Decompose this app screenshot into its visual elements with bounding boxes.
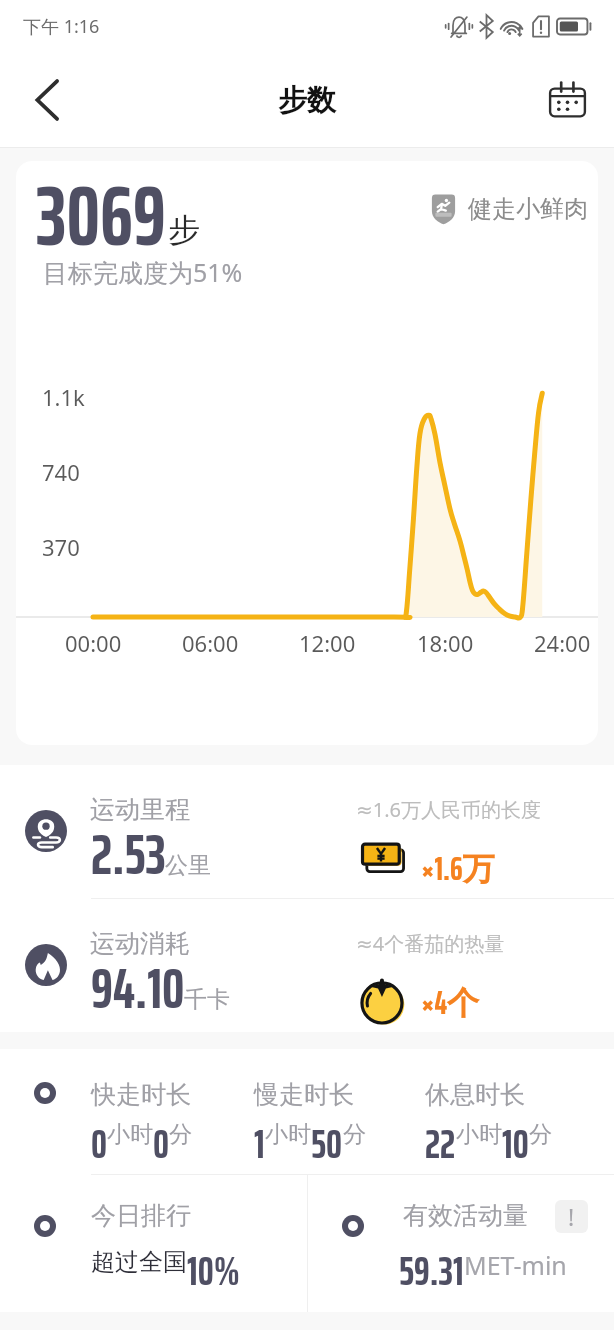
- staticText: 公里: [165, 851, 211, 880]
- staticText: 59.31: [399, 1240, 464, 1303]
- staticText: 22: [425, 1113, 456, 1176]
- staticText: 50: [311, 1113, 343, 1176]
- staticText: 有效活动量: [403, 1200, 528, 1231]
- staticText: 370: [42, 532, 80, 562]
- button[interactable]: Back: [0, 53, 94, 147]
- button[interactable]: 健走小鲜肉: [429, 193, 588, 225]
- staticText: 步: [168, 210, 200, 250]
- staticText: 运动里程: [90, 794, 190, 825]
- staticText: 慢走时长: [254, 1079, 354, 1110]
- staticText: 分: [529, 1120, 552, 1149]
- staticText: 0: [153, 1113, 169, 1176]
- staticText: MET-min: [464, 1248, 567, 1282]
- button[interactable]: 运动消耗: [0, 899, 614, 1032]
- staticText: 下午 1:16: [23, 14, 100, 39]
- staticText: 小时: [456, 1120, 502, 1149]
- staticText: 休息时长: [425, 1079, 525, 1110]
- staticText: 10: [502, 1113, 529, 1176]
- button[interactable]: 运动里程: [0, 765, 614, 898]
- staticText: 健走小鲜肉: [468, 194, 588, 224]
- staticText: 740: [42, 457, 80, 487]
- staticText: ×1.6万: [421, 844, 495, 894]
- staticText: 1.1k: [42, 382, 85, 412]
- button[interactable]: Calendar: [530, 63, 604, 137]
- staticText: 千卡: [184, 985, 230, 1014]
- staticText: 94.10: [91, 944, 185, 1032]
- staticText: 3069: [36, 161, 166, 282]
- staticText: 18:00: [417, 628, 474, 658]
- staticText: 24:00: [534, 628, 591, 658]
- staticText: 分: [343, 1120, 366, 1149]
- staticText: ≈1.6万人民币的长度: [356, 796, 541, 823]
- staticText: 00:00: [65, 628, 122, 658]
- staticText: 10%: [187, 1240, 240, 1303]
- staticText: 快走时长: [91, 1079, 191, 1110]
- staticText: ≈4个番茄的热量: [356, 930, 505, 957]
- staticText: !: [568, 1201, 575, 1232]
- staticText: ×4个: [421, 978, 480, 1028]
- staticText: 分: [169, 1120, 192, 1149]
- staticText: 运动消耗: [90, 928, 190, 959]
- staticText: 小时: [107, 1120, 153, 1149]
- staticText: 2.53: [91, 810, 166, 898]
- staticText: 12:00: [299, 628, 356, 658]
- staticText: 超过全国: [91, 1247, 187, 1277]
- staticText: 0: [91, 1113, 107, 1176]
- button[interactable]: 今日排行: [0, 1175, 307, 1312]
- staticText: 今日排行: [91, 1200, 191, 1231]
- staticText: 06:00: [182, 628, 239, 658]
- button[interactable]: 有效活动量: [308, 1175, 614, 1312]
- staticText: 步数: [278, 82, 336, 119]
- staticText: 小时: [265, 1120, 311, 1149]
- staticText: 目标完成度为51%: [43, 255, 243, 289]
- staticText: 1: [254, 1113, 265, 1176]
